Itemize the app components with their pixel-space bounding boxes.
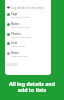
staticText: Notes [11,22,20,26]
staticText: Share [11,51,19,55]
staticText: Add to a list [11,44,25,47]
staticText: Add a note here [11,25,30,28]
staticText: All log details and add to lists [0,80,64,94]
button[interactable]: Lists [5,39,51,49]
button[interactable]: Back [5,4,51,11]
button[interactable]: Photos [5,30,51,40]
button[interactable]: Share [5,49,51,59]
staticText: Lists [11,41,18,45]
staticText: Add a photo now [11,35,32,38]
button[interactable]: Notes [5,20,51,30]
button[interactable]: Tags [5,10,51,20]
staticText: Add a tag to log [11,15,30,18]
other: Back [6,5,11,10]
staticText: Tags [11,12,18,16]
staticText: Log details for this entry [11,6,45,10]
staticText: Photos [11,32,21,36]
staticText: Share this log [11,54,27,57]
